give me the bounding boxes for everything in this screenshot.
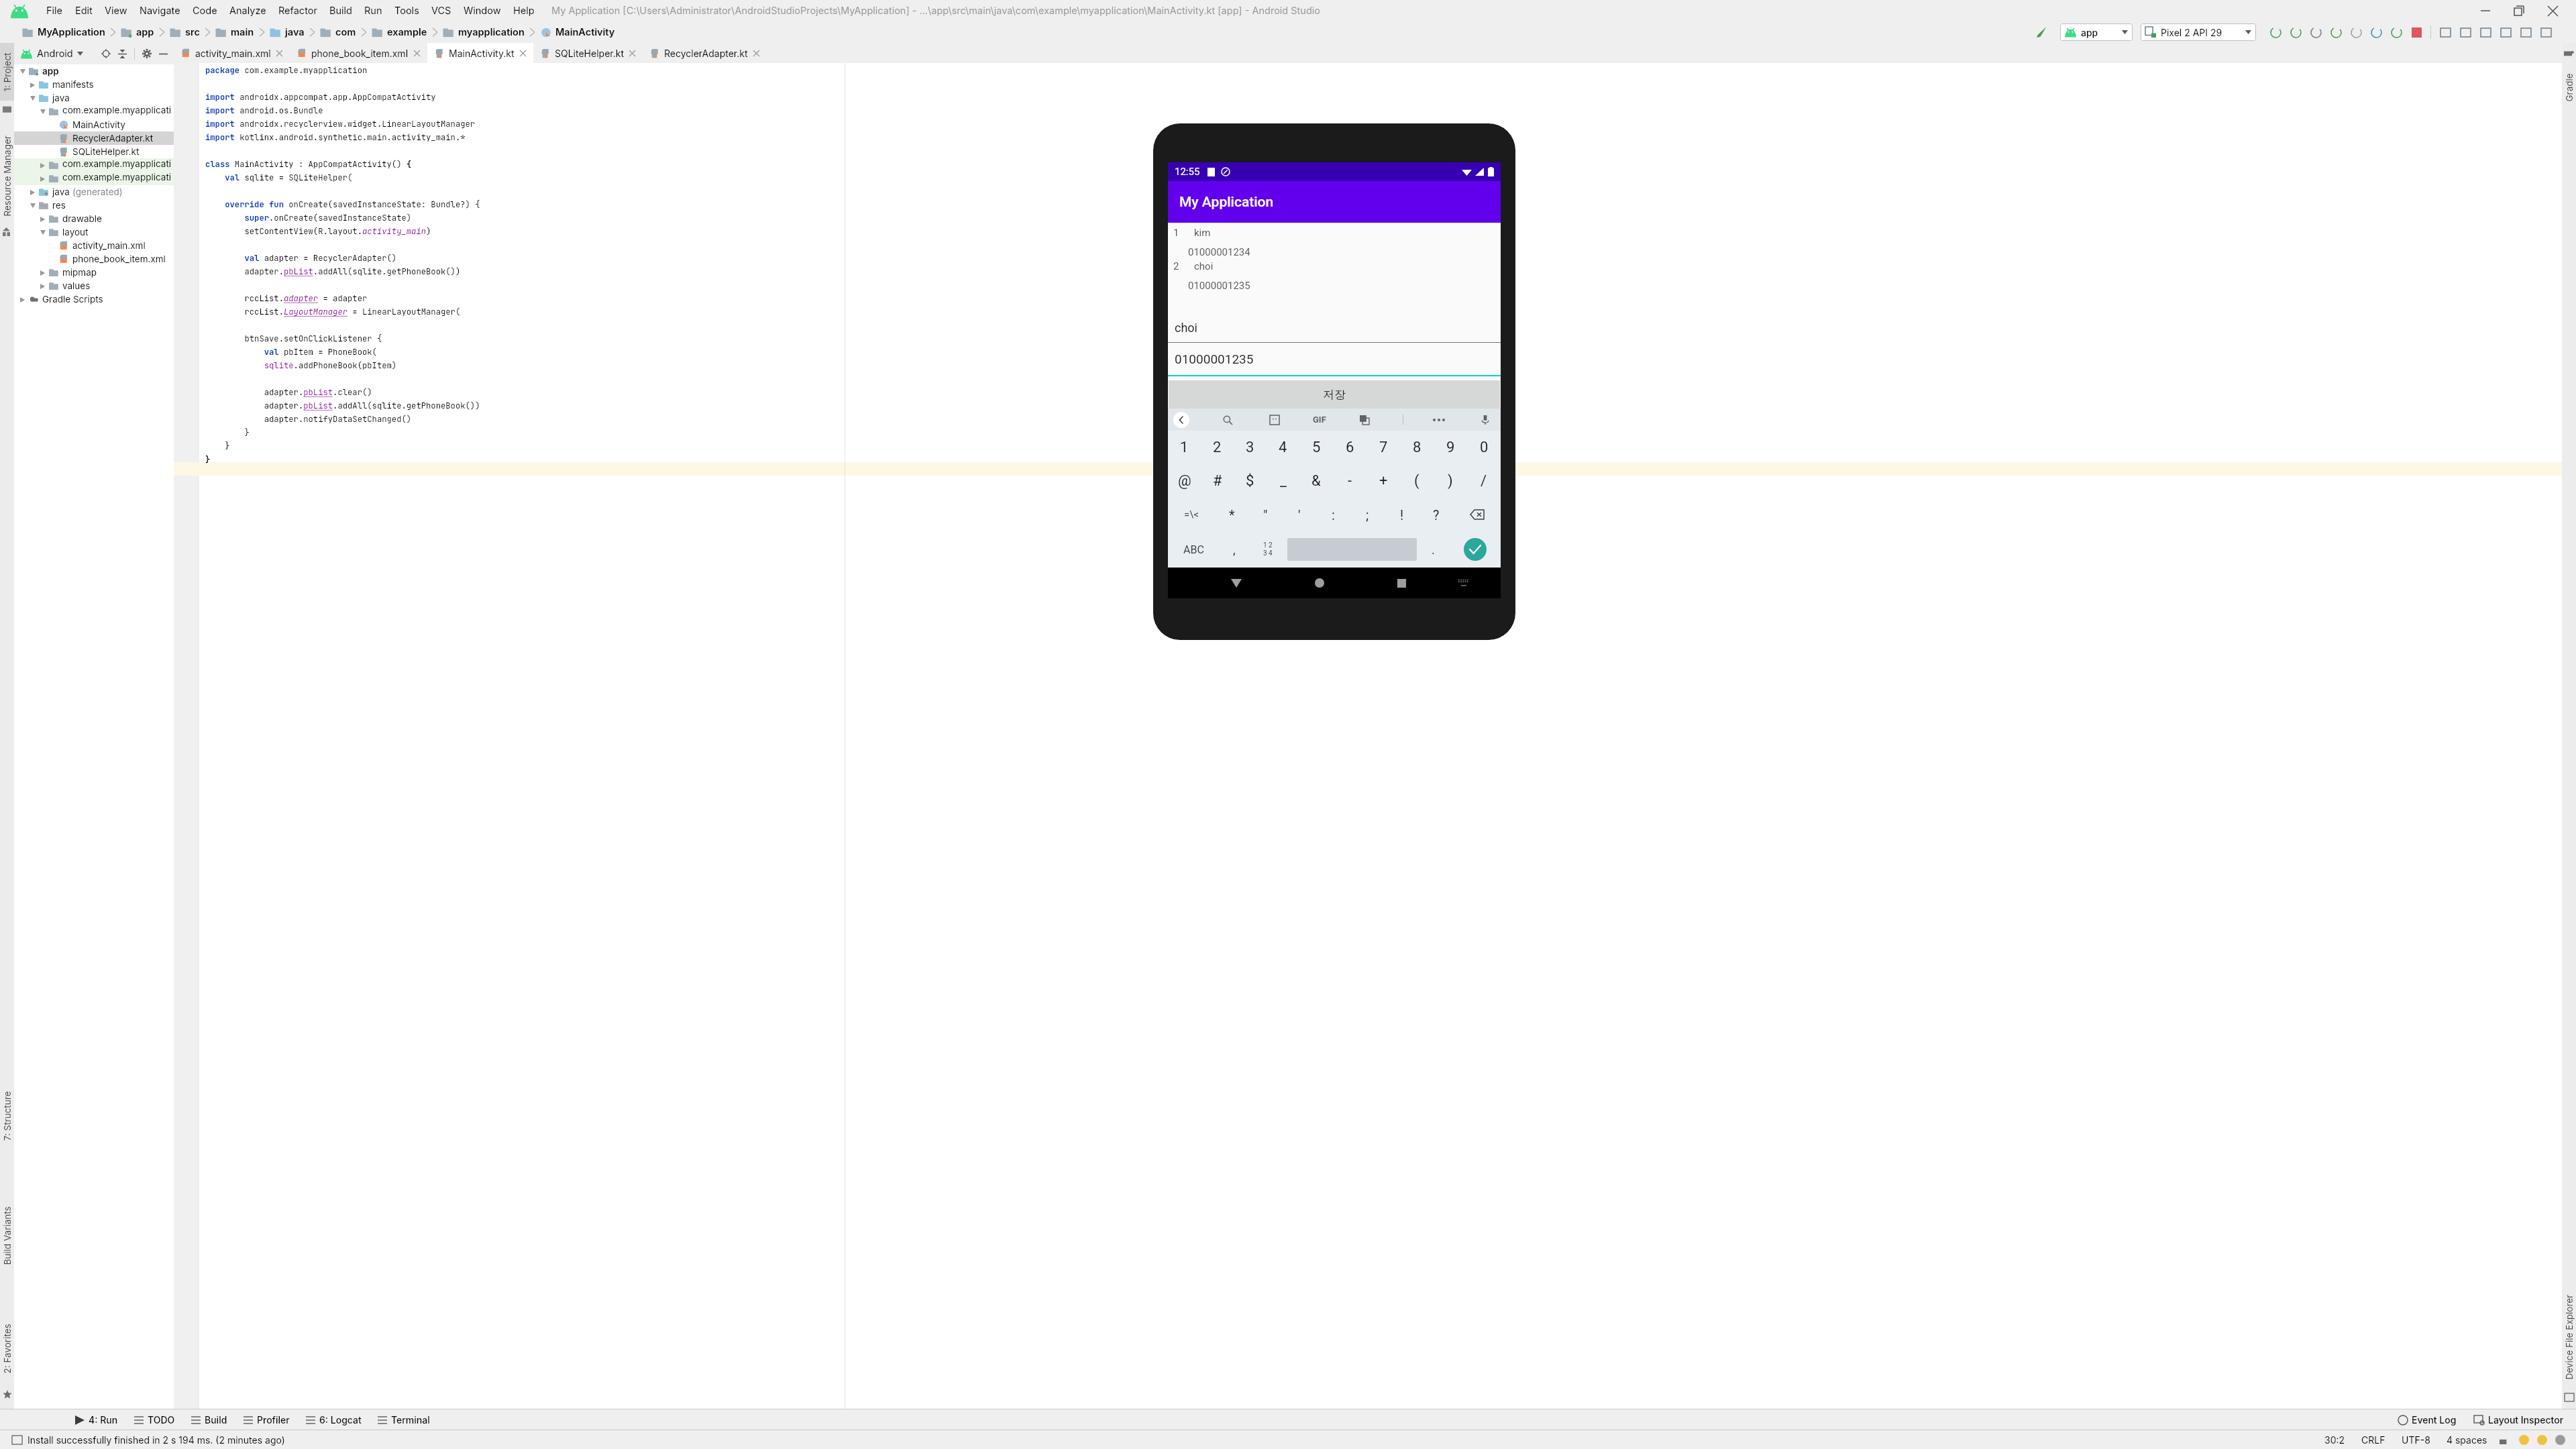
button[interactable]: 6 [1333,431,1366,464]
button[interactable]: & [1299,464,1333,498]
button[interactable]: Action 9 [2455,22,2475,42]
button[interactable]: * [1215,498,1248,531]
button[interactable]: 3 [1234,431,1267,464]
button[interactable]: SQLiteHelper.kt [14,145,174,158]
button[interactable]: Edit [69,5,99,17]
button[interactable]: Resource Manager [0,132,14,219]
button[interactable]: Sticker [1266,411,1283,429]
button[interactable]: 4 [1267,431,1299,464]
button[interactable]: Build [2033,23,2051,41]
button[interactable]: java [14,185,174,199]
button[interactable]: 7 [1366,431,1400,464]
button[interactable]: " [1248,498,1282,531]
button[interactable]: 7: Structure [0,1084,14,1148]
button[interactable]: main [213,26,256,38]
button[interactable]: com.example.myapplication [14,172,174,185]
button[interactable]: Settings [139,46,155,62]
button[interactable]: 0 [1467,431,1501,464]
button[interactable]: java [268,26,307,38]
button[interactable]: java [14,91,174,105]
button[interactable]: Enter [1449,531,1501,568]
button[interactable]: Action 10 [2475,22,2495,42]
button[interactable]: ? [1419,498,1453,531]
button[interactable]: ) [1434,464,1467,498]
button[interactable]: Toolbar action 6 [2386,22,2406,42]
button[interactable]: : [1316,498,1350,531]
button[interactable]: - [1333,464,1366,498]
button[interactable]: =\< [1168,498,1215,531]
button[interactable]: manifests [14,78,174,91]
button[interactable]: phone_book_item.xml [290,43,427,63]
button[interactable]: Navigate [133,5,186,17]
button[interactable]: Gradle Scripts [14,292,174,306]
button[interactable]: View [99,5,133,17]
button[interactable]: ! [1385,498,1419,531]
button[interactable]: drawable [14,212,174,225]
button[interactable]: 2: Favorites [0,1313,14,1383]
button[interactable]: Help [507,5,541,17]
button[interactable]: Build [183,1414,235,1426]
button[interactable]: app [2060,23,2133,41]
button[interactable]: Window [458,5,507,17]
button[interactable]: VCS [425,5,458,17]
button[interactable]: res [14,199,174,212]
button[interactable]: MainActivity [14,118,174,131]
button[interactable]: Home [1315,578,1324,588]
button[interactable] [1287,538,1417,561]
button[interactable]: Recents [1397,579,1406,588]
button[interactable]: # [1201,464,1234,498]
button[interactable]: values [14,279,174,292]
button[interactable]: Select opened file [98,46,114,62]
button[interactable]: Device File Explorer [2562,1287,2576,1387]
button[interactable]: 2 [1168,260,1501,294]
button[interactable]: mipmap [14,266,174,279]
button[interactable]: Back [1231,579,1242,588]
button[interactable]: / [1467,464,1501,498]
button[interactable]: Analyze [223,5,272,17]
button[interactable]: SQLiteHelper.kt [533,43,643,63]
button[interactable]: Action 12 [2516,22,2536,42]
button[interactable]: GIF [1313,415,1326,425]
button[interactable]: Translate [1356,411,1373,429]
button[interactable]: 1: Project [0,43,14,101]
button[interactable]: RecyclerAdapter.kt [14,131,174,145]
button[interactable]: Toolbar action 1 [2286,22,2306,42]
button[interactable]: 1 [1168,431,1201,464]
button[interactable]: File [40,5,69,17]
button[interactable]: Build Variants [0,1195,14,1276]
button[interactable]: 6: Logcat [298,1414,370,1426]
button[interactable]: Keyboard [1458,580,1469,587]
button[interactable]: Voice input [1477,411,1494,429]
button[interactable]: Toolbar action 7 [2406,22,2426,42]
button[interactable]: Collapse all [114,46,130,62]
button[interactable]: Toolbar action 0 [2265,22,2286,42]
button[interactable]: Toolbar action 4 [2346,22,2366,42]
button[interactable]: More [1433,419,1447,421]
button[interactable]: com [318,26,358,38]
button[interactable]: app [14,64,174,78]
button[interactable]: Layout Inspector [2474,1414,2564,1426]
button[interactable]: RecyclerAdapter.kt [643,43,767,63]
button[interactable]: Build [323,5,358,17]
button[interactable]: 2 [1201,431,1234,464]
button[interactable]: MainActivity.kt [427,43,533,63]
button[interactable]: Action 11 [2495,22,2516,42]
button[interactable]: Event Log [2398,1414,2457,1426]
button[interactable]: Backspace [1453,498,1501,531]
button[interactable]: @ [1168,464,1201,498]
button[interactable]: example [370,26,429,38]
button[interactable]: Action 13 [2536,22,2556,42]
button[interactable]: Restore [2508,0,2530,21]
button[interactable]: 5 [1299,431,1333,464]
button[interactable]: Android [21,48,83,60]
button[interactable]: MyApplication [20,26,107,38]
button[interactable]: phone_book_item.xml [14,252,174,266]
button[interactable]: ; [1350,498,1385,531]
button[interactable]: Refactor [272,5,323,17]
button[interactable]: Close [2541,0,2564,21]
button[interactable]: Code [186,5,223,17]
button[interactable]: com.example.myapplication [14,105,174,118]
button[interactable]: Tools [388,5,425,17]
button[interactable]: com.example.myapplication [14,158,174,172]
button[interactable]: . [1417,531,1449,568]
